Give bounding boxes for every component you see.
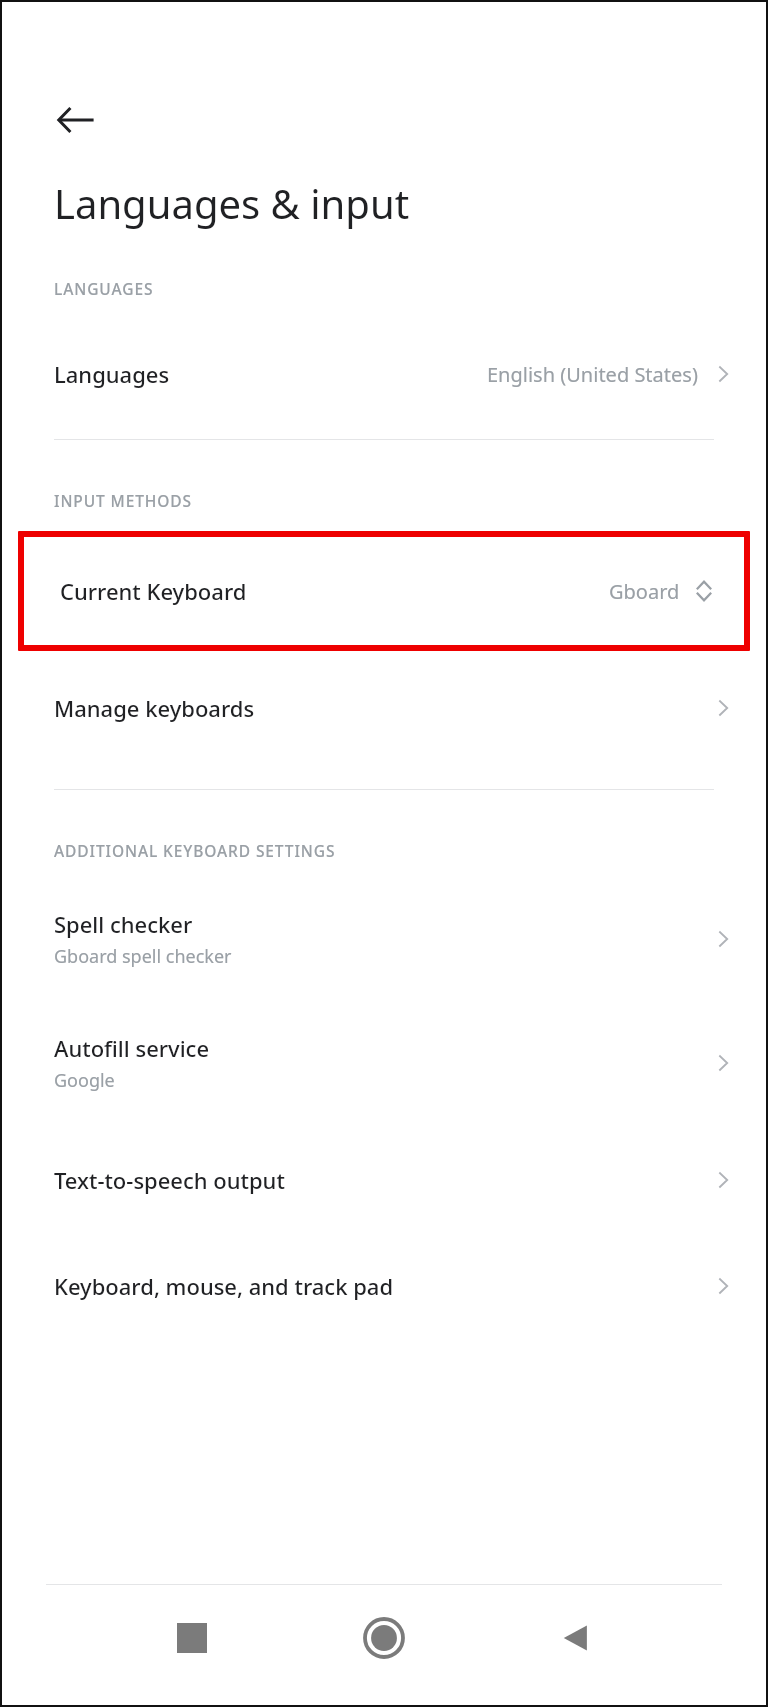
staticText: Spell checker [54, 909, 193, 939]
button[interactable]: Back [537, 1599, 615, 1677]
button[interactable]: Keyboard, mouse, and track pad [2, 1257, 766, 1315]
button[interactable]: Manage keyboards [2, 679, 766, 737]
staticText: Languages & input [54, 176, 410, 230]
button[interactable]: Home [345, 1599, 423, 1677]
button[interactable]: Text-to-speech output [2, 1151, 766, 1209]
button[interactable]: Current Keyboard [24, 537, 744, 645]
staticText: Text-to-speech output [54, 1165, 285, 1195]
staticText: Current Keyboard [60, 576, 609, 606]
button[interactable]: Autofill service [2, 1023, 766, 1103]
staticText: Languages [54, 359, 170, 389]
staticText: Autofill service [54, 1033, 210, 1063]
staticText: Google [54, 1068, 115, 1093]
staticText: Gboard [609, 578, 680, 605]
staticText: LANGUAGES [54, 278, 154, 299]
staticText: Keyboard, mouse, and track pad [54, 1271, 394, 1301]
button[interactable]: Spell checker [2, 899, 766, 979]
staticText: Gboard spell checker [54, 944, 232, 969]
staticText: ADDITIONAL KEYBOARD SETTINGS [54, 840, 336, 861]
button[interactable]: Recent apps [153, 1599, 231, 1677]
staticText: INPUT METHODS [54, 490, 193, 511]
staticText: Manage keyboards [54, 693, 255, 723]
staticText: English (United States) [487, 361, 698, 388]
button[interactable]: Languages [2, 345, 766, 403]
button[interactable]: Back [42, 86, 110, 154]
